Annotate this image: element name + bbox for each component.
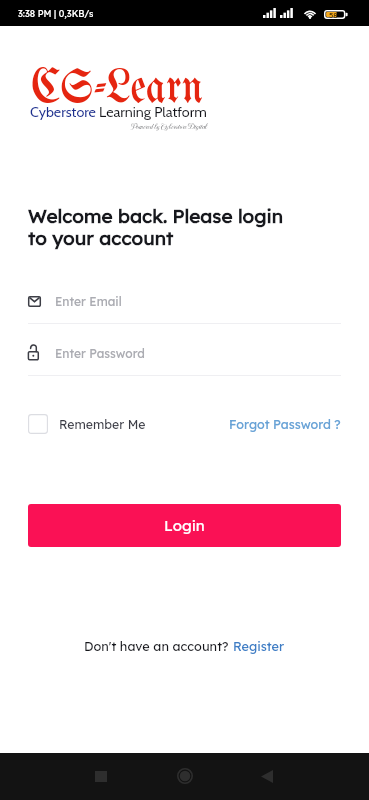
staticText: Forgot Password ?: [229, 416, 341, 432]
button[interactable]: Enter Email: [28, 289, 341, 314]
staticText: Enter Email: [55, 294, 122, 309]
staticText: 3:38 PM | 0,3KB/s: [18, 8, 94, 19]
button[interactable]: Forgot Password ?: [229, 416, 341, 432]
button[interactable]: Login: [28, 504, 341, 547]
button[interactable]: Register: [233, 638, 285, 654]
staticText: Welcome back. Please login to your accou…: [28, 204, 284, 249]
button[interactable]: Recent apps: [83, 758, 119, 794]
staticText: Don't have an account?: [84, 638, 233, 654]
staticText: Remember Me: [59, 417, 146, 432]
button[interactable]: Enter Password: [28, 341, 341, 366]
staticText: CS-Learn: [31, 64, 204, 115]
staticText: Register: [233, 638, 285, 654]
button[interactable]: Back: [249, 758, 285, 794]
staticText: 58: [329, 10, 338, 19]
button[interactable]: Home: [167, 758, 203, 794]
staticText: Cyberstore Learning Platform: [30, 103, 207, 120]
staticText: Powered by Cyberstore Digital: [130, 122, 207, 132]
staticText: Enter Password: [55, 346, 145, 361]
staticText: Login: [164, 516, 205, 535]
button[interactable]: Remember Me: [28, 414, 146, 434]
